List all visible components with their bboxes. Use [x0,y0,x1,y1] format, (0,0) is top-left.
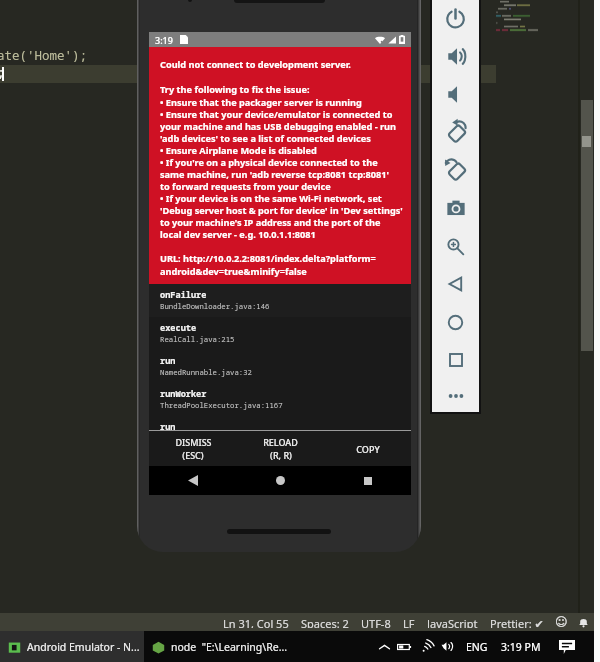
button[interactable]: run [149,416,411,430]
staticText: Ln 31, Col 55 [223,616,289,628]
staticText: ; [0,64,5,81]
staticText: RELOAD [263,436,298,448]
button[interactable]: COPY [324,431,411,466]
button[interactable]: Home [432,303,479,341]
button[interactable]: Notifications [573,617,594,628]
button[interactable]: Back [432,265,479,303]
button[interactable]: Rotate left [432,113,479,151]
staticText: RealCall.java:215 [160,334,235,344]
button[interactable]: runWorker [149,383,411,416]
staticText: DISMISS [175,436,212,448]
staticText: JavaScript [427,616,478,628]
staticText: onFailure [160,289,207,301]
staticText: ENG [466,640,488,654]
staticText: runWorker [160,388,207,400]
staticText: Spaces: 2 [301,616,349,628]
button[interactable]: 3:19 PM [496,631,546,662]
staticText: Android Emulator - N... [27,640,140,654]
button[interactable]: Network [418,631,438,662]
button[interactable]: Volume down [432,75,479,113]
button[interactable]: LF [397,613,421,631]
staticText: UTF-8 [361,616,391,628]
staticText: ThreadPoolExecutor.java:1167 [160,400,283,410]
staticText: (ESC) [182,449,204,461]
staticText: URL: http://10.0.2.2:8081/index.delta?pl… [160,252,376,277]
staticText: execute [160,322,197,334]
button[interactable]: Home [237,466,324,495]
staticText: Try the following to fix the issue: • En… [160,83,403,240]
button[interactable]: Battery [394,631,414,662]
button[interactable]: More options [432,379,479,412]
button[interactable]: ENG [460,631,494,662]
button[interactable]: Back [149,466,237,495]
button[interactable]: Action center [557,631,577,662]
staticText: (R, R) [270,449,292,461]
button[interactable]: run [149,350,411,383]
button[interactable]: Android Emulator - N... [0,631,144,662]
button[interactable]: Ln 31, Col 55 [217,613,295,631]
staticText: 3:19 PM [501,640,541,654]
staticText: run [160,421,176,430]
button[interactable]: Show hidden icons [374,631,394,662]
button[interactable]: UTF-8 [355,613,397,631]
button[interactable]: node "E:\Learning\Re... [144,631,288,662]
staticText: LF [403,616,415,628]
staticText: run [160,355,176,367]
button[interactable]: Recent apps [324,466,411,495]
button[interactable]: execute [149,317,411,350]
button[interactable]: Spaces: 2 [295,613,355,631]
button[interactable]: DISMISS [149,431,237,466]
staticText: ☺ [555,615,568,629]
staticText: NamedRunnable.java:32 [160,367,252,377]
button[interactable]: Power [432,0,479,37]
button[interactable]: Overview [432,341,479,379]
staticText: Prettier: ✔ [490,616,544,628]
staticText: node "E:\Learning\Re... [171,640,288,654]
button[interactable]: Volume up [432,37,479,75]
button[interactable]: Feedback [550,615,573,629]
staticText: ate('Home'); [0,47,88,64]
button[interactable]: Volume [437,631,457,662]
button[interactable]: Take screenshot [432,189,479,227]
button[interactable]: RELOAD [237,431,324,466]
button[interactable]: JavaScript [421,613,484,631]
button[interactable]: Rotate right [432,151,479,189]
staticText: BundleDownloader.java:146 [160,301,270,311]
button[interactable]: onFailure [149,284,411,317]
button[interactable]: Zoom [432,227,479,265]
staticText: 3:19 [155,34,173,46]
button[interactable]: Prettier: ✔ [484,613,550,631]
staticText: Could not connect to development server. [160,58,351,71]
staticText: COPY [356,443,380,455]
